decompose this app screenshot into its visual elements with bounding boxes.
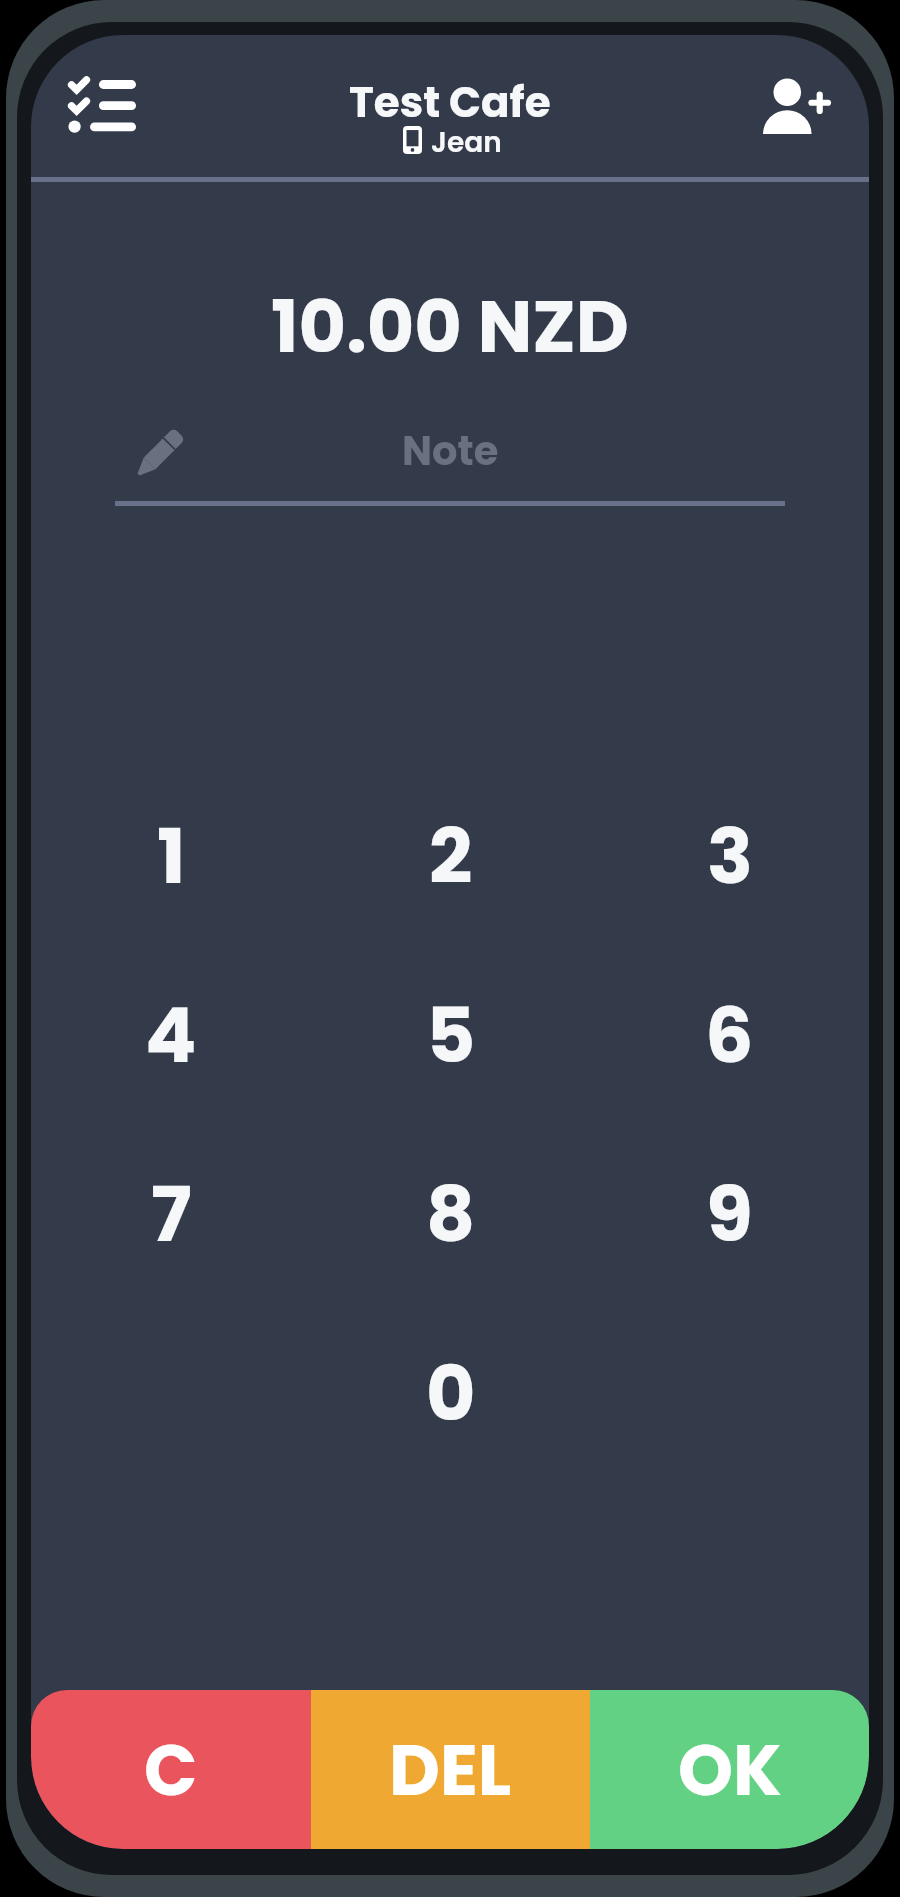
button[interactable]: Order list <box>54 56 150 152</box>
button[interactable]: 9 <box>590 1124 869 1303</box>
staticText: Note <box>402 423 499 479</box>
staticText: Jean <box>431 123 502 162</box>
staticText: 3 <box>707 803 753 909</box>
button[interactable]: OK <box>590 1690 869 1849</box>
staticText: 2 <box>429 803 473 909</box>
button[interactable]: Add customer <box>749 58 845 154</box>
button[interactable]: 2 <box>311 766 590 945</box>
button[interactable]: 4 <box>31 945 311 1124</box>
staticText: 0 <box>426 1340 476 1446</box>
button[interactable]: 3 <box>590 766 869 945</box>
staticText: 10.00 NZD <box>31 275 869 377</box>
button[interactable]: C <box>31 1690 311 1849</box>
button[interactable]: Note <box>115 417 785 506</box>
button[interactable]: DEL <box>311 1690 590 1849</box>
button[interactable]: 0 <box>311 1303 590 1482</box>
staticText: 6 <box>705 982 754 1088</box>
button[interactable]: 7 <box>31 1124 311 1303</box>
button[interactable]: 1 <box>31 766 311 945</box>
staticText: DEL <box>389 1721 512 1819</box>
button[interactable]: 5 <box>311 945 590 1124</box>
staticText: 9 <box>706 1161 753 1267</box>
button[interactable]: 8 <box>311 1124 590 1303</box>
staticText: 8 <box>426 1161 476 1267</box>
staticText: Test Cafe <box>349 73 551 132</box>
staticText: 5 <box>426 982 476 1088</box>
staticText: OK <box>678 1721 782 1819</box>
staticText: C <box>144 1721 198 1819</box>
staticText: 7 <box>151 1161 192 1267</box>
staticText: 1 <box>157 803 186 909</box>
staticText: 4 <box>145 982 197 1088</box>
button[interactable]: 6 <box>590 945 869 1124</box>
